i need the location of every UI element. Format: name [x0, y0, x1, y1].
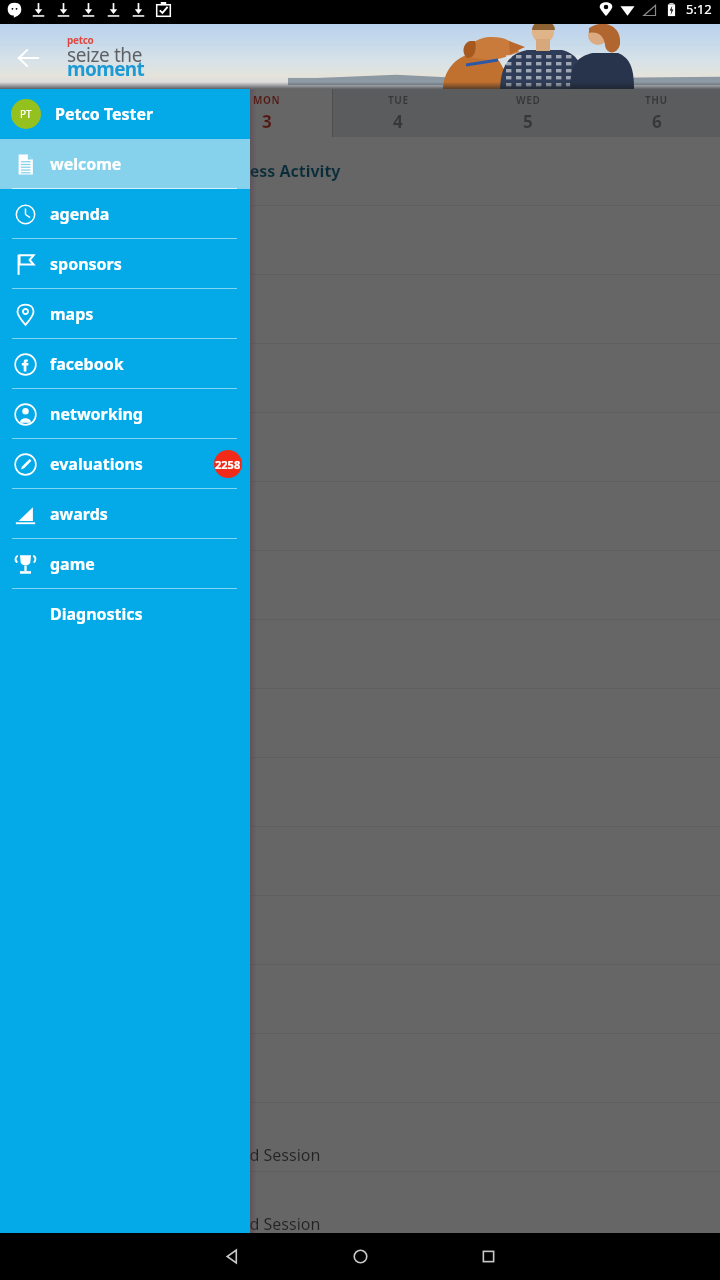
staticText: Break	[205, 367, 249, 389]
button[interactable]: TUE	[333, 89, 463, 137]
staticText: Wellness Activity	[205, 160, 341, 182]
staticText: petco	[67, 33, 94, 47]
staticText: Lunch	[205, 436, 251, 458]
button[interactable]: Back	[168, 1233, 296, 1280]
button[interactable]: WED	[463, 89, 593, 137]
staticText: 2258	[215, 457, 241, 472]
button[interactable]: 10:30 AM	[0, 413, 720, 482]
button[interactable]: THU	[593, 89, 720, 137]
staticText: game	[50, 553, 95, 575]
button[interactable]: 6:30 PM	[0, 1034, 720, 1103]
staticText: 7:00 AM	[20, 231, 70, 249]
staticText: PT	[20, 107, 32, 121]
staticText: 6	[652, 110, 662, 133]
staticText: 5	[523, 110, 533, 133]
staticText: Guided Session	[205, 1144, 321, 1166]
button[interactable]: 1:00 PM	[0, 620, 720, 689]
staticText: 11:00 AM	[20, 507, 77, 525]
button[interactable]: sponsors	[0, 239, 250, 289]
staticText: moment	[67, 56, 145, 82]
button[interactable]: networking	[0, 389, 250, 439]
button[interactable]: 5:30 PM	[0, 965, 720, 1034]
button[interactable]: SUN	[0, 89, 200, 137]
button[interactable]: agenda	[0, 189, 250, 239]
staticText: 2	[95, 110, 105, 133]
button[interactable]: evaluations	[0, 439, 250, 489]
button[interactable]: 7:00 AM	[0, 206, 720, 275]
button[interactable]: 11:00 AM	[0, 482, 720, 551]
staticText: 6:00 AM	[20, 162, 70, 180]
staticText: 5:12	[686, 0, 712, 18]
staticText: Petco Tester	[55, 103, 154, 125]
button[interactable]: 8:30 PM	[0, 1172, 720, 1241]
button[interactable]: Back	[8, 38, 48, 78]
staticText: 10:30 AM	[20, 438, 77, 456]
button[interactable]: 9:30 PM	[0, 1241, 720, 1280]
staticText: evaluations	[50, 453, 143, 475]
button[interactable]: Home	[296, 1233, 424, 1280]
staticText: welcome	[50, 153, 122, 175]
staticText: networking	[50, 403, 143, 425]
staticText: WED	[516, 93, 541, 107]
staticText: maps	[50, 303, 94, 325]
staticText: seize the	[67, 42, 143, 68]
staticText: facebook	[50, 353, 124, 375]
button[interactable]: 6:00 AM	[0, 137, 720, 206]
button[interactable]: PT	[0, 89, 250, 139]
staticText: Guided Session	[205, 1213, 321, 1235]
button[interactable]: 3:30 PM	[0, 827, 720, 896]
staticText: MON	[253, 93, 281, 107]
staticText: Diagnostics	[50, 603, 143, 625]
staticText: 8:00 AM	[20, 300, 70, 318]
button[interactable]: facebook	[0, 339, 250, 389]
staticText: agenda	[50, 203, 110, 225]
button[interactable]: 8:00 AM	[0, 275, 720, 344]
button[interactable]: 7:30 PM	[0, 1103, 720, 1172]
button[interactable]: 3:00 PM	[0, 758, 720, 827]
staticText: 12:00 PM	[20, 576, 77, 594]
button[interactable]: 4:30 PM	[0, 896, 720, 965]
staticText: 4	[393, 110, 403, 133]
staticText: Break	[205, 229, 249, 251]
button[interactable]: awards	[0, 489, 250, 539]
button[interactable]: 9:30 AM	[0, 344, 720, 413]
staticText: sponsors	[50, 253, 122, 275]
staticText: TUE	[388, 93, 409, 107]
staticText: THU	[645, 93, 668, 107]
button[interactable]: maps	[0, 289, 250, 339]
staticText: awards	[50, 503, 108, 525]
staticText: Lunch	[205, 574, 251, 596]
button[interactable]: MON	[200, 89, 333, 137]
staticText: 3	[262, 110, 272, 133]
button[interactable]: Recents	[424, 1233, 552, 1280]
staticText: 9:30 AM	[20, 369, 70, 387]
button[interactable]: Diagnostics	[0, 589, 250, 639]
button[interactable]: welcome	[0, 139, 250, 189]
button[interactable]: game	[0, 539, 250, 589]
button[interactable]: 2:00 PM	[0, 689, 720, 758]
button[interactable]: 12:00 PM	[0, 551, 720, 620]
